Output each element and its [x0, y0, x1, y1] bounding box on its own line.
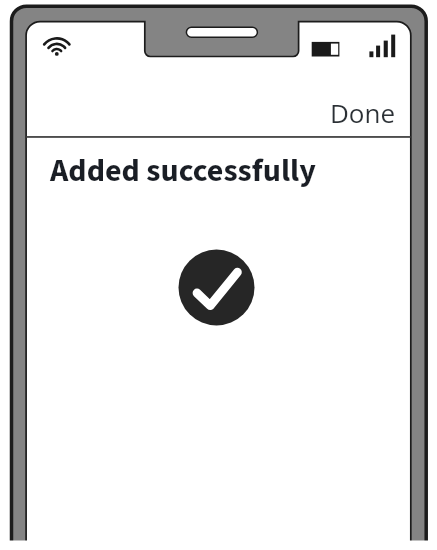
staticText: Added successfully: [50, 148, 316, 194]
staticText: Done: [330, 95, 396, 130]
button[interactable]: Done: [313, 92, 413, 132]
other: Added successfully: [178, 249, 255, 326]
